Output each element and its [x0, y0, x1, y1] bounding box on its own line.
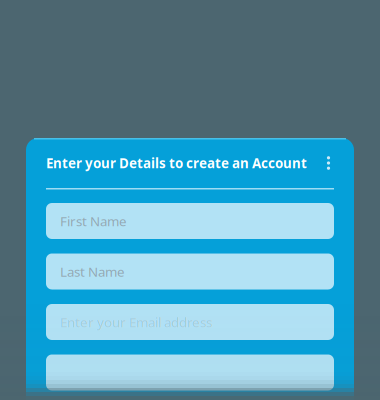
button[interactable]: Enter your Email address [46, 304, 334, 340]
button[interactable]: Password [46, 354, 334, 390]
staticText: Enter your Details to create an Account [46, 154, 307, 172]
button[interactable]: More options [323, 150, 334, 176]
staticText: Enter your Email address [60, 313, 212, 331]
button[interactable]: Last Name [46, 253, 334, 289]
staticText: Last Name [60, 263, 125, 280]
button[interactable]: First Name [46, 203, 334, 239]
staticText: Password [60, 364, 118, 381]
staticText: First Name [60, 212, 127, 230]
